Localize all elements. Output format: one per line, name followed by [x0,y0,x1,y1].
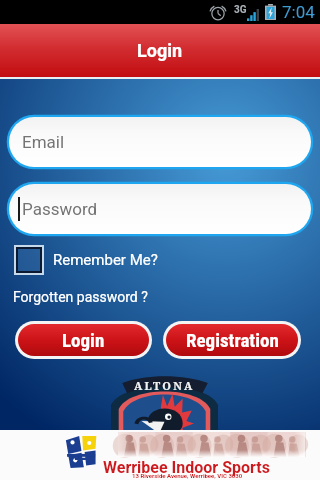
button[interactable]: Login [18,324,149,356]
button[interactable]: Remember Me? [14,245,158,275]
staticText: 13 Riverside Avenue, Werribee, VIC 3030 [132,472,243,479]
button[interactable]: Forgotten password ? [13,289,148,305]
staticText: 7:04 [282,2,315,22]
staticText: Login [137,40,183,61]
staticText: Werribee Indoor Sports [103,458,270,477]
staticText: Remember Me? [53,251,158,269]
staticText: 3G [234,4,247,16]
button[interactable]: Password [9,184,311,234]
staticText: ALTONA [134,378,195,393]
button[interactable]: Registration [166,324,298,356]
button[interactable]: Email [9,117,311,167]
staticText: Email [22,132,65,152]
staticText: Password [22,199,98,219]
staticText: Registration [186,329,279,351]
staticText: Login [62,329,105,351]
